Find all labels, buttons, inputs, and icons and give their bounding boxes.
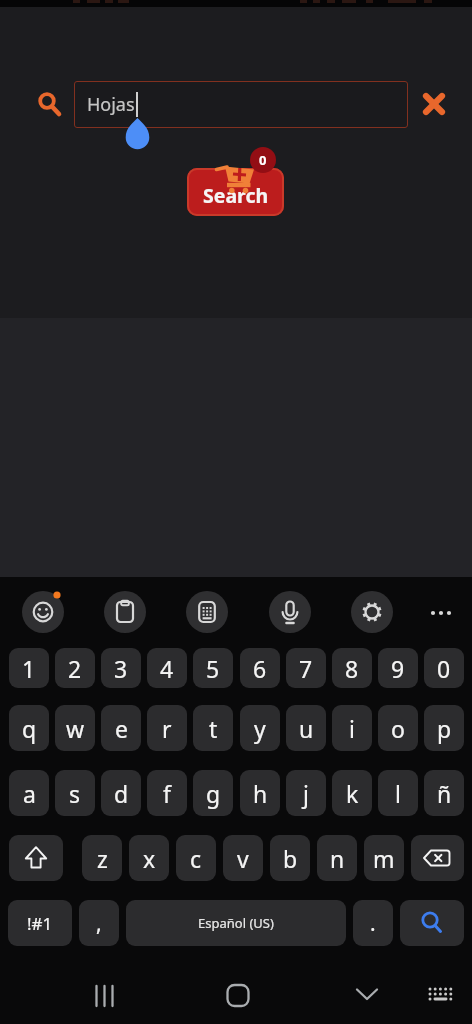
button[interactable]: 4 <box>147 648 187 688</box>
button[interactable]: 3 <box>101 648 141 688</box>
button[interactable]: 9 <box>378 648 418 688</box>
button[interactable]: o <box>378 705 418 751</box>
button[interactable]: c <box>176 835 216 881</box>
staticText: g <box>206 778 221 809</box>
button[interactable]: . <box>353 900 393 946</box>
button[interactable]: 5 <box>193 648 233 688</box>
button[interactable] <box>22 591 64 633</box>
staticText: l <box>395 778 401 809</box>
staticText: 0 <box>437 653 451 684</box>
staticText: o <box>391 713 405 744</box>
staticText: b <box>283 843 298 874</box>
button[interactable]: l <box>378 770 418 816</box>
staticText: Search <box>203 182 269 209</box>
button[interactable]: r <box>147 705 187 751</box>
button[interactable]: y <box>240 705 280 751</box>
button[interactable] <box>104 591 146 633</box>
button[interactable]: b <box>270 835 310 881</box>
staticText: 8 <box>345 653 359 684</box>
button[interactable]: 8 <box>332 648 372 688</box>
button[interactable]: Search <box>187 168 284 216</box>
staticText: y <box>254 713 266 744</box>
button[interactable]: m <box>364 835 404 881</box>
button[interactable]: j <box>286 770 326 816</box>
button[interactable]: f <box>147 770 187 816</box>
button[interactable] <box>426 598 456 628</box>
button[interactable]: x <box>129 835 169 881</box>
staticText: s <box>69 778 81 809</box>
staticText: n <box>330 843 345 874</box>
staticText: u <box>299 713 314 744</box>
button[interactable] <box>186 591 228 633</box>
staticText: Español (US) <box>198 914 274 932</box>
button[interactable]: z <box>82 835 122 881</box>
staticText: r <box>162 713 172 744</box>
button[interactable]: v <box>223 835 263 881</box>
button[interactable]: d <box>101 770 141 816</box>
staticText: z <box>97 843 108 874</box>
staticText: 2 <box>68 653 82 684</box>
button[interactable]: Hojas <box>74 81 408 128</box>
button[interactable]: s <box>55 770 95 816</box>
staticText: c <box>190 843 202 874</box>
staticText: q <box>22 713 37 744</box>
staticText: p <box>437 713 452 744</box>
button[interactable]: !#1 <box>8 900 72 946</box>
staticText: ñ <box>437 778 452 809</box>
button[interactable]: g <box>193 770 233 816</box>
staticText: . <box>370 909 376 938</box>
button[interactable]: q <box>9 705 49 751</box>
staticText: a <box>23 778 36 809</box>
staticText: Hojas <box>87 92 135 117</box>
button[interactable] <box>214 978 262 1014</box>
staticText: 1 <box>22 653 36 684</box>
staticText: h <box>253 778 268 809</box>
button[interactable]: u <box>286 705 326 751</box>
staticText: 7 <box>299 653 313 684</box>
staticText: 6 <box>253 653 267 684</box>
staticText: x <box>143 843 156 874</box>
staticText: m <box>373 843 395 874</box>
button[interactable]: h <box>240 770 280 816</box>
button[interactable]: ñ <box>424 770 464 816</box>
button[interactable] <box>9 835 63 881</box>
button[interactable]: k <box>332 770 372 816</box>
staticText: k <box>346 778 359 809</box>
staticText: w <box>66 713 85 744</box>
button[interactable]: w <box>55 705 95 751</box>
staticText: 4 <box>160 653 174 684</box>
button[interactable]: , <box>79 900 119 946</box>
button[interactable] <box>33 87 63 119</box>
button[interactable] <box>411 835 464 881</box>
button[interactable]: 2 <box>55 648 95 688</box>
staticText: !#1 <box>27 912 53 935</box>
button[interactable] <box>424 980 458 1010</box>
button[interactable]: n <box>317 835 357 881</box>
button[interactable]: i <box>332 705 372 751</box>
button[interactable]: t <box>193 705 233 751</box>
staticText: 9 <box>391 653 405 684</box>
staticText: 5 <box>206 653 220 684</box>
button[interactable]: 0 <box>424 648 464 688</box>
button[interactable]: 7 <box>286 648 326 688</box>
staticText: 0 <box>259 151 267 169</box>
staticText: , <box>96 909 102 938</box>
button[interactable]: 6 <box>240 648 280 688</box>
staticText: f <box>163 778 171 809</box>
button[interactable]: a <box>9 770 49 816</box>
button[interactable] <box>343 978 391 1014</box>
button[interactable]: Español (US) <box>126 900 346 946</box>
button[interactable] <box>400 900 464 946</box>
staticText: e <box>115 713 128 744</box>
staticText: i <box>349 713 355 744</box>
button[interactable] <box>351 591 393 633</box>
staticText: v <box>237 843 249 874</box>
staticText: d <box>114 778 129 809</box>
button[interactable] <box>80 978 128 1014</box>
button[interactable] <box>419 89 449 119</box>
button[interactable]: p <box>424 705 464 751</box>
button[interactable]: 1 <box>9 648 49 688</box>
staticText: t <box>209 713 218 744</box>
button[interactable] <box>269 591 311 633</box>
button[interactable]: e <box>101 705 141 751</box>
